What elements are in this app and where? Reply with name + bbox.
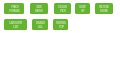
staticText: TOP — [59, 25, 64, 29]
staticText: ALL — [38, 25, 43, 29]
staticText: BY — [81, 9, 85, 13]
button[interactable]: CATEGORY — [4, 19, 27, 30]
button[interactable]: SORT — [75, 3, 90, 14]
staticText: FILTERS — [99, 5, 109, 9]
button[interactable]: RATING — [53, 19, 68, 30]
staticText: SORT — [79, 5, 86, 9]
staticText: MORE — [100, 9, 108, 13]
staticText: PRICE — [11, 5, 19, 9]
button[interactable]: COLOR — [54, 3, 71, 14]
staticText: RATING — [56, 21, 66, 25]
staticText: MENU — [35, 9, 43, 13]
staticText: CATEGORY — [9, 21, 22, 25]
button[interactable]: FILTERS — [95, 3, 113, 14]
staticText: PICK — [60, 9, 66, 13]
button[interactable]: PRICE — [4, 3, 24, 14]
staticText: COLOR — [58, 5, 67, 9]
staticText: SIZE — [36, 5, 42, 9]
staticText: LIST — [13, 25, 19, 29]
staticText: FORMAT — [9, 9, 20, 13]
button[interactable]: SIZE — [30, 3, 48, 14]
button[interactable]: BRAND — [32, 19, 48, 30]
staticText: BRAND — [36, 21, 45, 25]
